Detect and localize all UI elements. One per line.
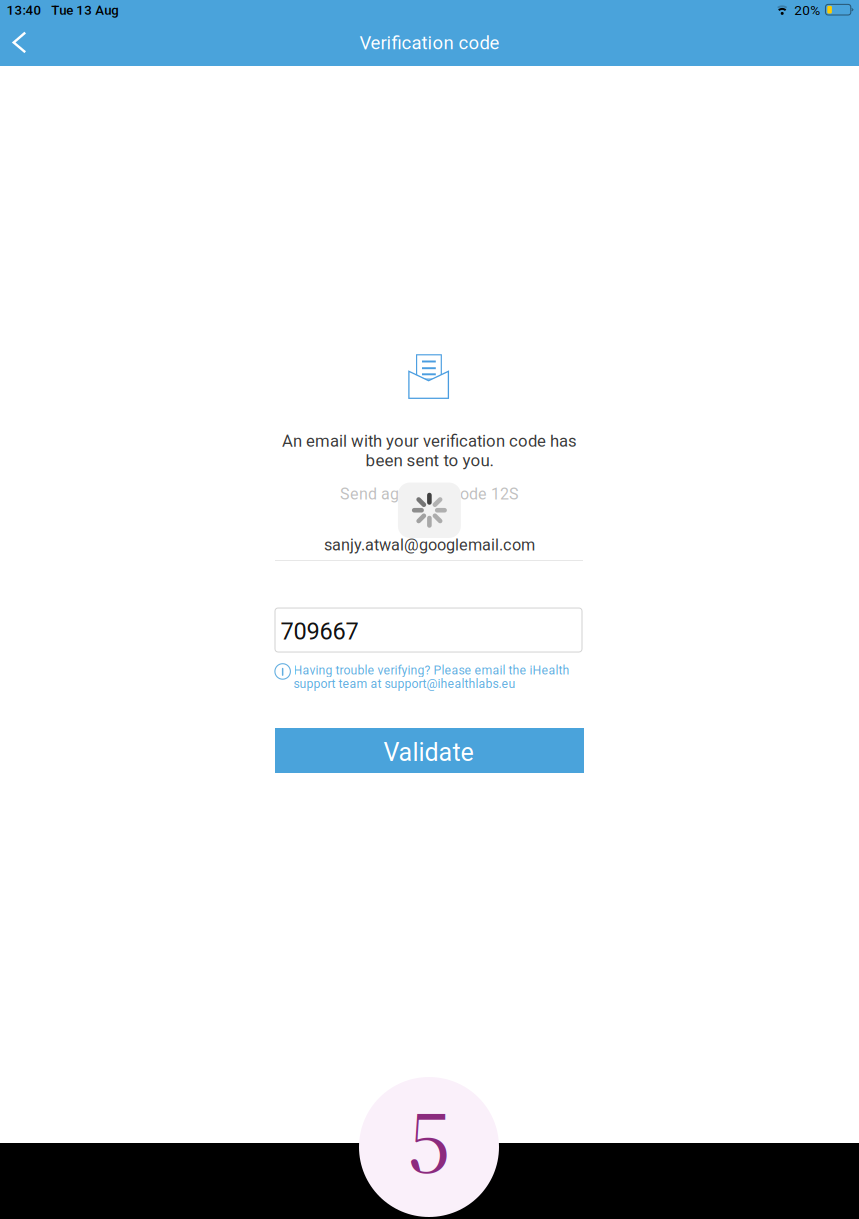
- staticText: Send again the code 12S: [340, 485, 519, 503]
- staticText: 13:40: [7, 3, 42, 18]
- staticText: 20%: [794, 2, 820, 18]
- button[interactable]: Validate: [0, 0, 309, 45]
- staticText: Having trouble verifying? Please email t…: [294, 663, 570, 677]
- staticText: support team at support@ihealthlabs.eu: [294, 676, 516, 691]
- staticText: Validate: [383, 738, 473, 767]
- staticText: An email with your verification code has: [282, 431, 577, 451]
- staticText: 5: [407, 1079, 450, 1203]
- button[interactable]: Back: [0, 0, 48, 44]
- staticText: Verification code: [359, 32, 499, 54]
- staticText: Tue 13 Aug: [51, 3, 118, 18]
- staticText: been sent to you.: [365, 450, 493, 470]
- staticText: sanjy.atwal@googlemail.com: [324, 535, 535, 555]
- staticText: 709667: [280, 617, 358, 645]
